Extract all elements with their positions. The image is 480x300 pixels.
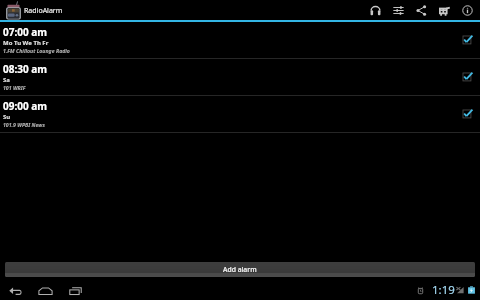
button[interactable]: Equalizer	[387, 0, 410, 20]
button[interactable]: Alarm enabled	[462, 108, 473, 119]
staticText: Sa	[3, 76, 10, 84]
button[interactable]: Info	[456, 0, 479, 20]
button[interactable]: Share	[410, 0, 433, 20]
staticText: 1:19	[432, 282, 455, 298]
staticText: 101 WRIF	[3, 84, 26, 91]
staticText: 1.FM Chillout Lounge Radio	[3, 47, 70, 54]
button[interactable]: Home	[38, 287, 53, 295]
staticText: 07:00 am	[3, 25, 48, 39]
staticText: 08:30 am	[3, 62, 48, 76]
staticText: 09:00 am	[3, 99, 48, 113]
button[interactable]: Alarm enabled	[462, 34, 473, 45]
button[interactable]: Add alarm	[5, 262, 475, 277]
button[interactable]: Back	[9, 287, 21, 295]
button[interactable]: Store	[433, 0, 456, 20]
staticText: Mo Tu We Th Fr	[3, 39, 49, 47]
staticText: RadioAlarm	[24, 6, 63, 16]
button[interactable]: Headphones	[364, 0, 387, 20]
button[interactable]: 07:00 am	[0, 22, 480, 58]
button[interactable]: 08:30 am	[0, 59, 480, 95]
staticText: Add alarm	[223, 265, 257, 274]
staticText: 101.9 WPBI News	[3, 121, 45, 128]
staticText: Su	[3, 113, 11, 121]
button[interactable]: Recent apps	[69, 287, 82, 295]
button[interactable]: 09:00 am	[0, 96, 480, 132]
button[interactable]: Alarm enabled	[462, 71, 473, 82]
